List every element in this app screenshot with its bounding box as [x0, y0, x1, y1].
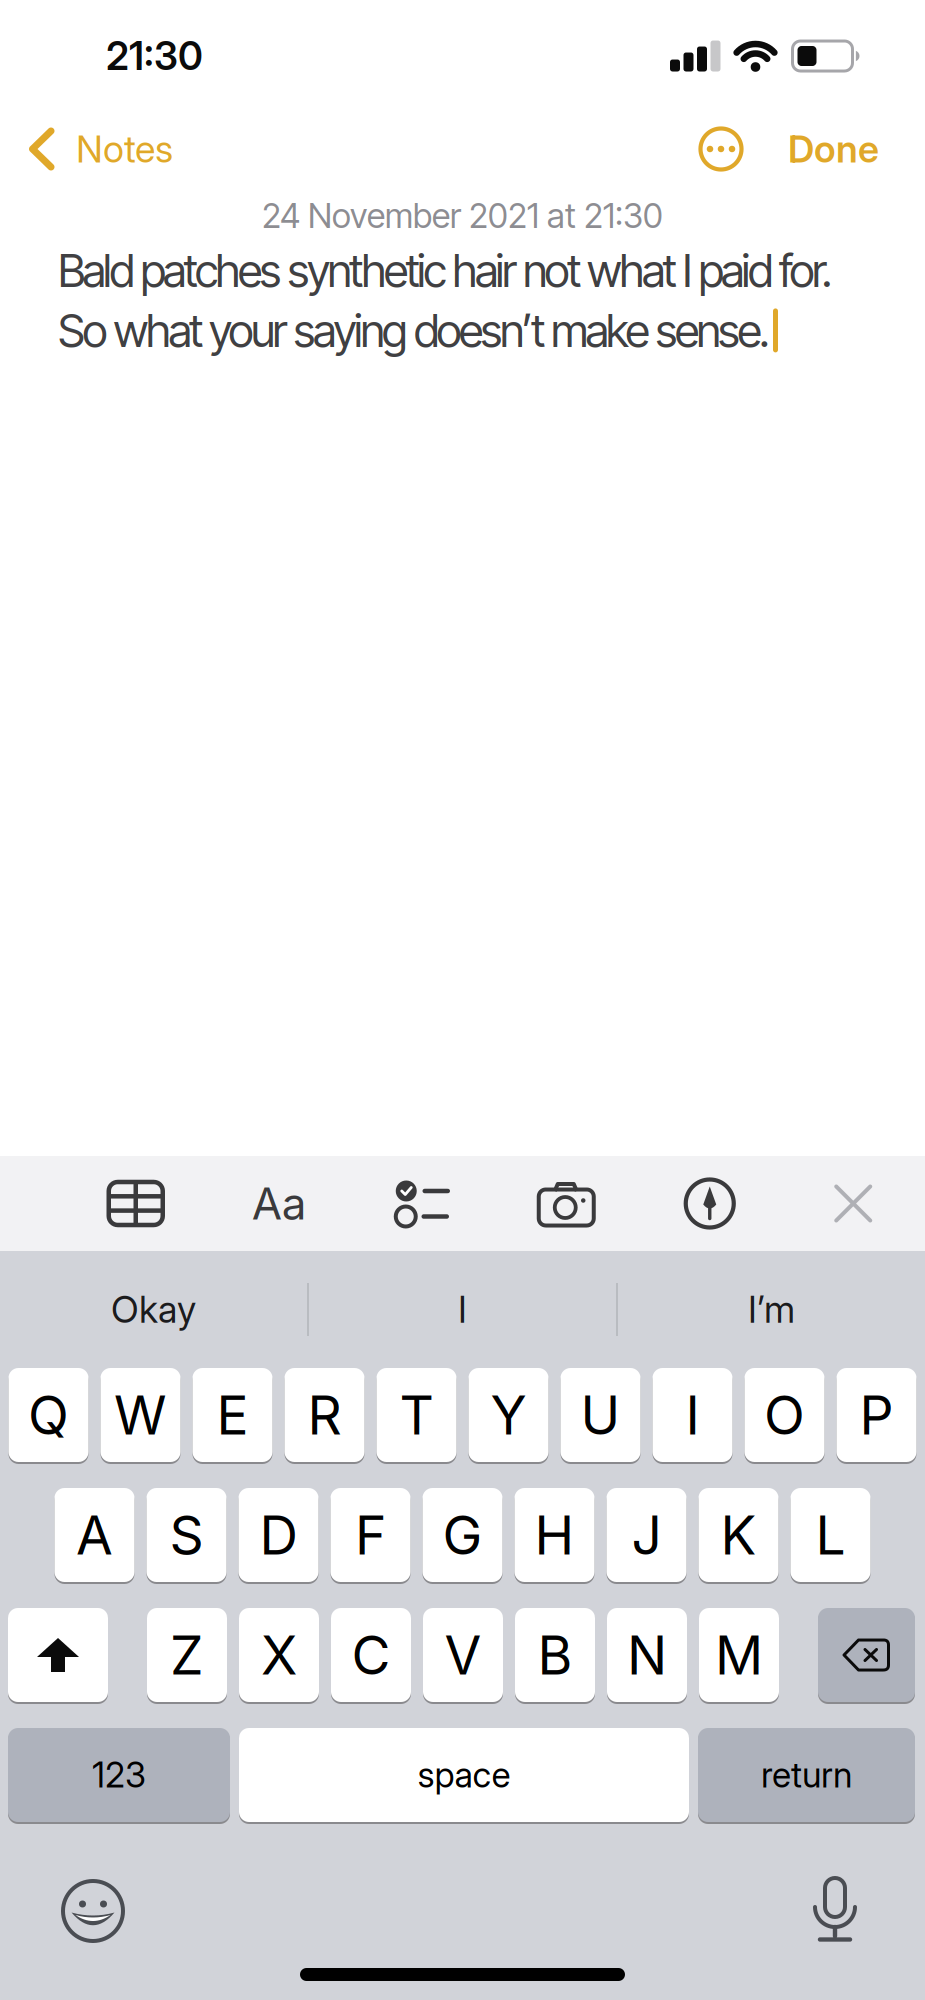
- button[interactable]: K: [698, 1488, 778, 1582]
- staticText: K: [720, 1503, 756, 1566]
- staticText: 123: [92, 1755, 146, 1795]
- button[interactable]: return: [698, 1728, 915, 1822]
- button[interactable]: I: [652, 1368, 732, 1462]
- button[interactable]: Okay: [0, 1251, 307, 1368]
- button[interactable]: Notes: [28, 127, 173, 171]
- staticText: I: [685, 1383, 699, 1446]
- staticText: E: [216, 1383, 248, 1446]
- staticText: I’m: [748, 1287, 795, 1332]
- button[interactable]: [64, 1156, 207, 1251]
- staticText: 21:30: [106, 33, 203, 79]
- button[interactable]: S: [146, 1488, 226, 1582]
- staticText: J: [631, 1503, 661, 1566]
- button[interactable]: A: [54, 1488, 134, 1582]
- staticText: M: [715, 1623, 763, 1686]
- staticText: return: [761, 1755, 852, 1795]
- staticText: Bald patches synthetic hair not what I p…: [58, 243, 832, 298]
- button[interactable]: F: [330, 1488, 410, 1582]
- button[interactable]: O: [744, 1368, 824, 1462]
- staticText: X: [261, 1623, 297, 1686]
- staticText: I: [458, 1287, 467, 1332]
- button[interactable]: [494, 1156, 638, 1251]
- button[interactable]: [638, 1156, 781, 1251]
- staticText: S: [169, 1503, 203, 1566]
- button[interactable]: P: [836, 1368, 916, 1462]
- button[interactable]: X: [239, 1608, 319, 1702]
- button[interactable]: U: [560, 1368, 640, 1462]
- staticText: Aa: [252, 1177, 307, 1229]
- staticText: V: [444, 1623, 481, 1686]
- button[interactable]: C: [331, 1608, 411, 1702]
- button[interactable]: Done: [788, 127, 879, 171]
- staticText: Y: [490, 1383, 526, 1446]
- staticText: space: [417, 1755, 510, 1795]
- staticText: Z: [170, 1623, 204, 1686]
- staticText: H: [534, 1503, 574, 1566]
- staticText: Done: [788, 127, 879, 171]
- button[interactable]: [698, 126, 744, 172]
- button[interactable]: W: [100, 1368, 180, 1462]
- staticText: 24 November 2021 at 21:30: [262, 195, 663, 236]
- button[interactable]: [813, 1878, 857, 1944]
- staticText: C: [351, 1623, 390, 1686]
- button[interactable]: [63, 1881, 123, 1941]
- button[interactable]: [781, 1156, 925, 1251]
- button[interactable]: M: [699, 1608, 779, 1702]
- button[interactable]: T: [376, 1368, 456, 1462]
- button[interactable]: E: [192, 1368, 272, 1462]
- staticText: F: [355, 1503, 386, 1566]
- button[interactable]: [351, 1156, 494, 1251]
- staticText: R: [307, 1383, 341, 1446]
- button[interactable]: [8, 1608, 108, 1702]
- button[interactable]: N: [607, 1608, 687, 1702]
- button[interactable]: L: [790, 1488, 870, 1582]
- staticText: D: [259, 1503, 297, 1566]
- button[interactable]: D: [238, 1488, 318, 1582]
- button[interactable]: Aa: [207, 1156, 351, 1251]
- button[interactable]: I: [309, 1251, 616, 1368]
- button[interactable]: J: [606, 1488, 686, 1582]
- button[interactable]: R: [284, 1368, 364, 1462]
- staticText: So what your saying doesn’t make sense.: [58, 303, 770, 358]
- button[interactable]: space: [239, 1728, 689, 1822]
- staticText: O: [764, 1383, 805, 1446]
- staticText: A: [76, 1503, 113, 1566]
- staticText: T: [399, 1383, 433, 1446]
- button[interactable]: Q: [8, 1368, 88, 1462]
- button[interactable]: Y: [468, 1368, 548, 1462]
- staticText: L: [815, 1503, 845, 1566]
- button[interactable]: Z: [147, 1608, 227, 1702]
- staticText: W: [114, 1383, 167, 1446]
- staticText: Notes: [76, 127, 173, 171]
- staticText: B: [537, 1623, 572, 1686]
- button[interactable]: I’m: [618, 1251, 925, 1368]
- button[interactable]: H: [514, 1488, 594, 1582]
- staticText: G: [442, 1503, 482, 1566]
- staticText: Okay: [111, 1287, 196, 1332]
- button[interactable]: B: [515, 1608, 595, 1702]
- staticText: Q: [28, 1383, 69, 1446]
- staticText: U: [580, 1383, 620, 1446]
- staticText: N: [627, 1623, 667, 1686]
- button[interactable]: V: [423, 1608, 503, 1702]
- button[interactable]: [818, 1608, 915, 1702]
- button[interactable]: 123: [8, 1728, 230, 1822]
- staticText: P: [859, 1383, 893, 1446]
- button[interactable]: G: [422, 1488, 502, 1582]
